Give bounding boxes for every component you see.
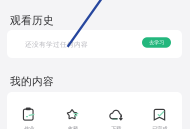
staticText: 收藏 [68, 125, 78, 129]
button[interactable]: 去学习 [142, 37, 171, 48]
staticText: 已完成 [152, 125, 167, 129]
staticText: 作业 [24, 125, 34, 129]
staticText: 下载 [111, 125, 121, 129]
button[interactable]: 作业 [7, 107, 51, 129]
staticText: 去学习 [149, 39, 164, 46]
button[interactable]: 收藏 [51, 107, 94, 129]
button[interactable]: 已完成 [138, 107, 181, 129]
staticText: 观看历史 [10, 14, 54, 27]
staticText: 我的内容 [10, 75, 54, 88]
staticText: 还没有学过任何内容 [25, 40, 88, 49]
button[interactable]: 下载 [94, 107, 138, 129]
